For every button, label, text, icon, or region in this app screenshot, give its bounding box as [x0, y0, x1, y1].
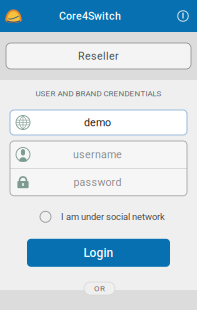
button[interactable]: I am under social network: [36, 210, 161, 224]
staticText: Core4Switch: [59, 10, 121, 22]
staticText: USER AND BRAND CRENDENTIALS: [35, 89, 161, 98]
button[interactable]: Info: [173, 6, 193, 26]
staticText: OR: [94, 284, 105, 293]
staticText: password: [73, 176, 121, 188]
staticText: Login: [83, 246, 113, 260]
staticText: username: [73, 148, 122, 161]
button[interactable]: Login: [27, 239, 170, 267]
staticText: I am under social network: [61, 211, 165, 222]
staticText: Reseller: [78, 50, 119, 62]
button[interactable]: Reseller: [6, 43, 191, 69]
staticText: demo: [84, 116, 111, 129]
